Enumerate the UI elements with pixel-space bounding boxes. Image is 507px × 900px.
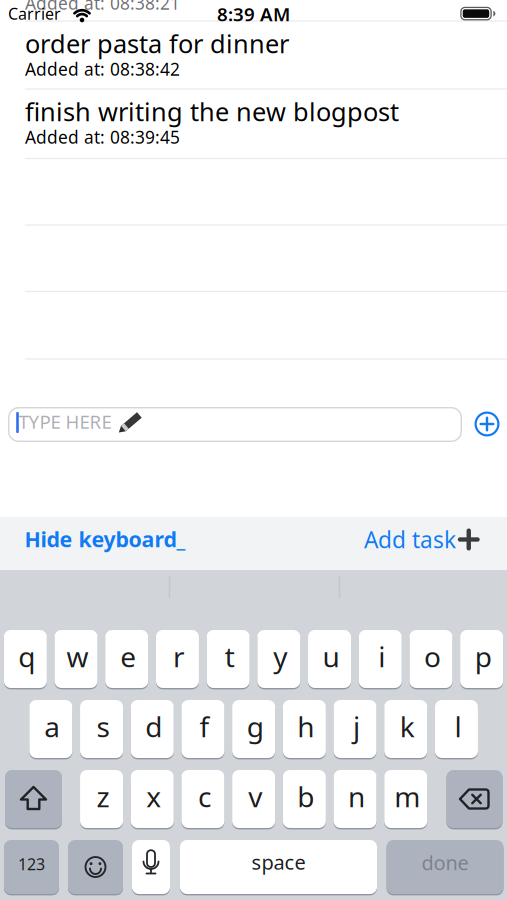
button[interactable] (132, 839, 170, 895)
staticText: q (18, 638, 35, 675)
button[interactable]: q (4, 629, 47, 689)
staticText: finish writing the new blogpost (25, 95, 399, 128)
staticText: s (96, 708, 109, 745)
button[interactable]: d (131, 699, 174, 759)
staticText: m (394, 778, 420, 815)
staticText: t (225, 638, 235, 675)
button[interactable]: t (207, 629, 250, 689)
staticText: u (323, 638, 340, 675)
button[interactable]: l (435, 699, 478, 759)
button[interactable]: Add task (270, 525, 480, 553)
staticText: space (251, 849, 305, 875)
button[interactable]: f (181, 699, 224, 759)
button[interactable]: c (181, 769, 224, 829)
button[interactable]: p (460, 629, 503, 689)
staticText: j (353, 708, 360, 745)
staticText: b (297, 778, 314, 815)
button[interactable]: TYPE HERE (8, 407, 462, 442)
button[interactable]: order pasta for dinner (0, 21, 507, 89)
staticText: g (247, 708, 264, 745)
button[interactable]: finish writing the new blogpost (0, 89, 507, 158)
button[interactable]: n (334, 769, 377, 829)
staticText: h (297, 708, 314, 745)
button[interactable]: Hide keyboard_ (24, 525, 185, 553)
button[interactable]: a (29, 699, 72, 759)
staticText: f (199, 708, 209, 745)
staticText: l (454, 708, 461, 745)
button[interactable] (446, 769, 502, 829)
button[interactable] (68, 839, 123, 895)
button[interactable]: w (54, 629, 97, 689)
button[interactable]: z (80, 769, 123, 829)
staticText: order pasta for dinner (25, 27, 289, 60)
staticText: Hide keyboard_ (24, 525, 185, 553)
staticText: n (348, 778, 365, 815)
staticText: Added at: 08:39:45 (25, 125, 180, 148)
staticText: x (146, 778, 161, 815)
staticText: w (66, 638, 88, 675)
staticText: i (378, 638, 385, 675)
button[interactable]: r (156, 629, 199, 689)
staticText: k (400, 708, 415, 745)
staticText: Added at: 08:38:21 (25, 0, 180, 14)
staticText: Carrier (8, 3, 61, 24)
button[interactable]: 123 (4, 839, 59, 895)
button[interactable]: s (80, 699, 123, 759)
button[interactable]: o (409, 629, 452, 689)
staticText: y (273, 638, 287, 675)
staticText: p (475, 638, 492, 675)
button[interactable]: x (131, 769, 174, 829)
button[interactable]: done (386, 839, 503, 895)
staticText: o (424, 638, 441, 675)
button[interactable] (474, 411, 499, 436)
button[interactable]: g (232, 699, 275, 759)
staticText: done (421, 849, 468, 876)
staticText: Added at: 08:38:42 (25, 57, 180, 80)
button[interactable]: y (257, 629, 300, 689)
button[interactable]: space (180, 839, 377, 895)
staticText: c (198, 778, 211, 815)
staticText: d (145, 708, 162, 745)
staticText: r (173, 638, 185, 675)
button[interactable]: u (308, 629, 351, 689)
button[interactable]: e (105, 629, 148, 689)
button[interactable]: k (384, 699, 427, 759)
button[interactable] (5, 769, 62, 829)
staticText: a (44, 708, 60, 745)
staticText: TYPE HERE (18, 409, 111, 434)
staticText: 8:39 AM (217, 2, 290, 26)
button[interactable]: v (232, 769, 275, 829)
staticText: v (248, 778, 262, 815)
button[interactable]: j (334, 699, 377, 759)
staticText: e (120, 638, 136, 675)
staticText: z (96, 778, 109, 815)
staticText: Add task (364, 524, 456, 554)
button[interactable]: h (283, 699, 326, 759)
button[interactable]: b (283, 769, 326, 829)
staticText: 123 (18, 853, 45, 875)
button[interactable]: i (359, 629, 402, 689)
button[interactable]: m (384, 769, 427, 829)
